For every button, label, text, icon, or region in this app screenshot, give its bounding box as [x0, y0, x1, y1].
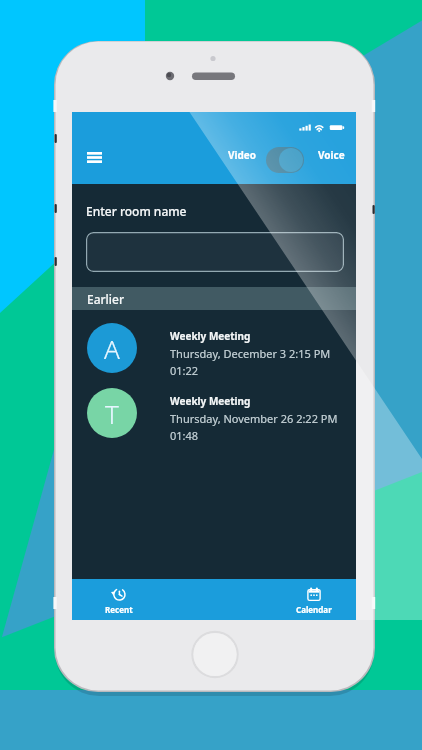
staticText: Calendar	[296, 604, 332, 615]
button[interactable]: Open navigation menu	[79, 149, 110, 165]
button[interactable]: Switch between video and voice calls	[266, 147, 304, 173]
staticText: Video	[228, 148, 257, 162]
button[interactable]: A	[72, 323, 356, 381]
staticText: Thursday, November 26 2:22 PM	[170, 411, 338, 426]
button[interactable]	[86, 232, 344, 272]
staticText: 01:22	[170, 363, 199, 378]
staticText: Voice	[318, 148, 345, 162]
staticText: T	[105, 396, 119, 431]
staticText: Earlier	[87, 291, 125, 307]
staticText: A	[104, 331, 120, 366]
staticText: Enter room name	[86, 203, 187, 219]
staticText: Recent	[105, 604, 133, 615]
staticText: Weekly Meeting	[170, 394, 251, 408]
staticText: Weekly Meeting	[170, 329, 251, 343]
staticText: 01:48	[170, 428, 199, 443]
button[interactable]: Recent	[79, 579, 159, 620]
staticText: Thursday, December 3 2:15 PM	[170, 346, 331, 361]
button[interactable]: T	[72, 388, 356, 446]
button[interactable]: Calendar	[274, 579, 354, 620]
